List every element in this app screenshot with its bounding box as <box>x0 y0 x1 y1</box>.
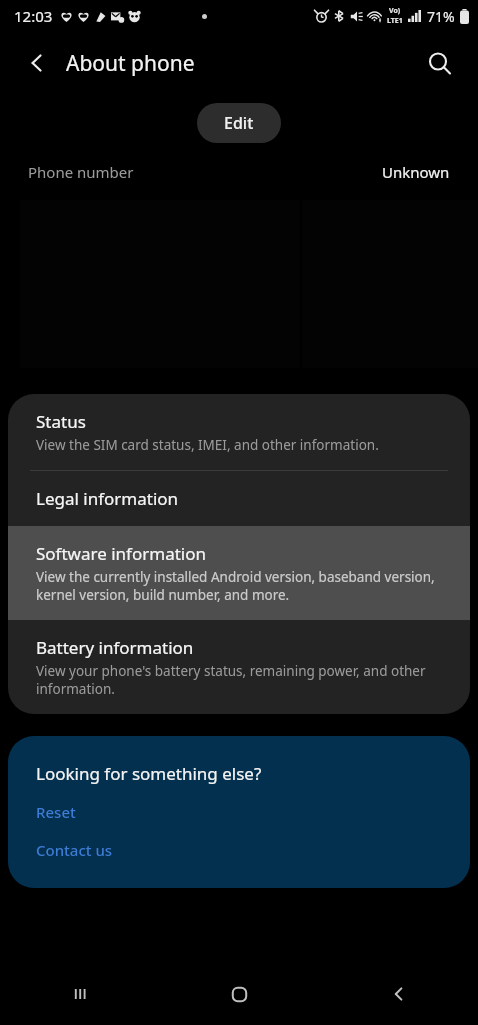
button[interactable]: Search <box>416 40 462 86</box>
button[interactable]: Recent apps <box>0 963 160 1025</box>
staticText: Status <box>36 410 86 433</box>
staticText: View the SIM card status, IMEI, and othe… <box>36 436 379 454</box>
staticText: 71% <box>427 7 455 26</box>
button[interactable]: Contact us <box>36 840 113 860</box>
button[interactable]: Back <box>14 40 60 86</box>
staticText: Phone number <box>28 162 134 182</box>
button[interactable]: Edit <box>197 103 281 143</box>
staticText: Legal information <box>36 487 179 510</box>
staticText: Reset <box>36 802 76 822</box>
staticText: Edit <box>224 112 254 134</box>
button[interactable]: Status <box>8 394 470 470</box>
staticText: Contact us <box>36 840 113 860</box>
staticText: Software information <box>36 542 206 565</box>
staticText: Looking for something else? <box>36 762 262 785</box>
button[interactable]: Reset <box>36 802 76 822</box>
staticText: About phone <box>66 49 195 78</box>
button[interactable]: Back <box>319 963 478 1025</box>
button[interactable]: Home <box>160 963 319 1025</box>
staticText: 12:03 <box>14 6 53 26</box>
staticText: View the currently installed Android ver… <box>36 568 448 604</box>
button[interactable]: Legal information <box>8 471 470 526</box>
button[interactable]: Phone number <box>0 152 478 192</box>
staticText: View your phone's battery status, remain… <box>36 662 448 698</box>
staticText: Battery information <box>36 636 194 659</box>
button[interactable]: Battery information <box>8 620 470 714</box>
staticText: LTE1 <box>387 16 403 26</box>
staticText: Unknown <box>382 162 450 182</box>
button[interactable]: Software information <box>8 526 470 620</box>
staticText: Vo) <box>389 6 401 16</box>
